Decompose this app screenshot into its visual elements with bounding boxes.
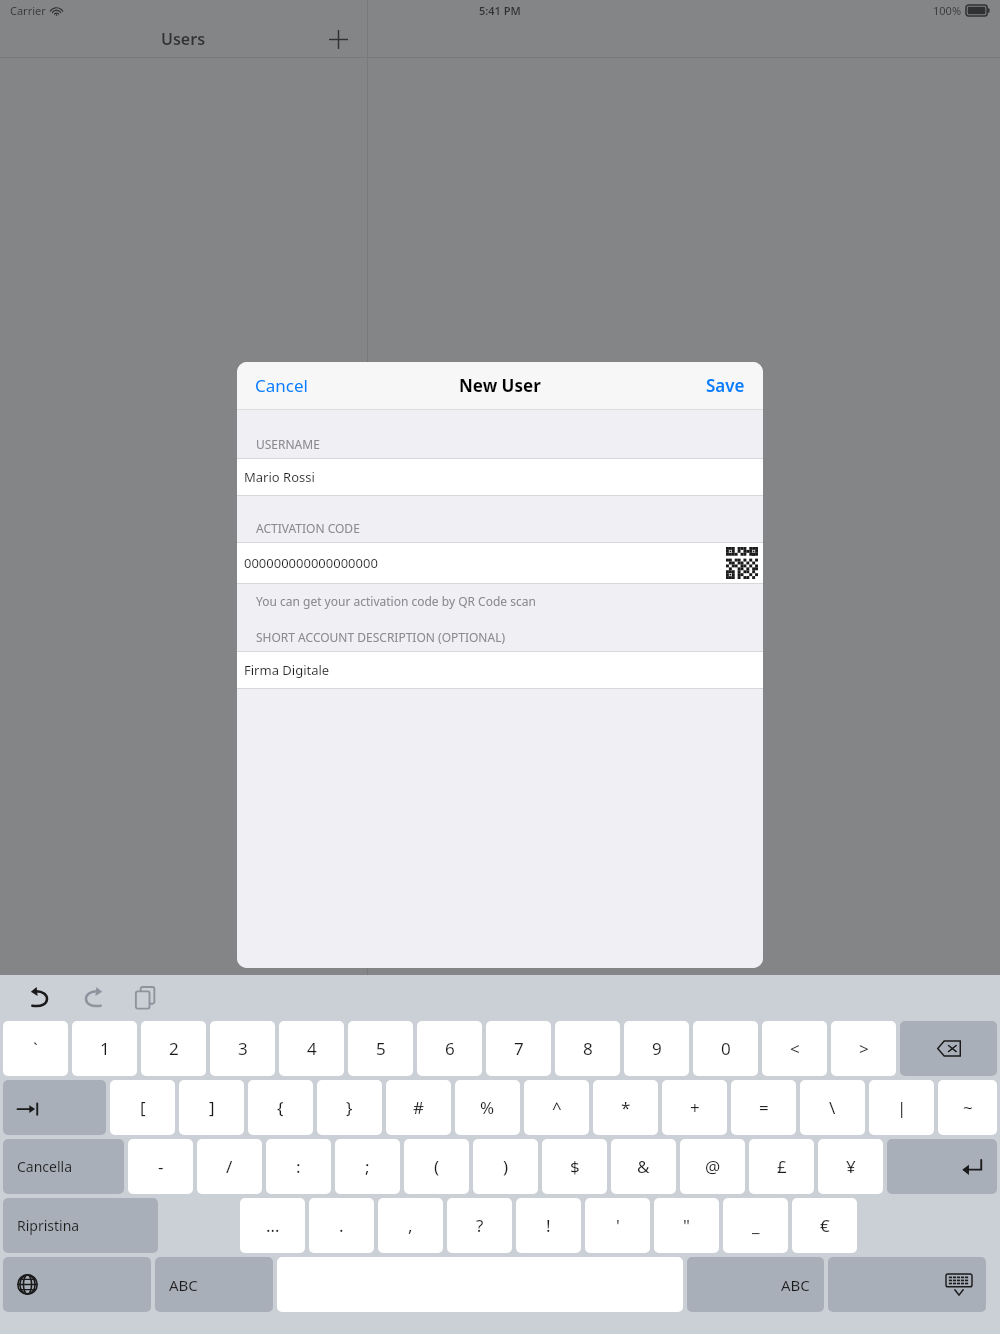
button[interactable]: # bbox=[386, 1080, 451, 1135]
button[interactable]: € bbox=[792, 1198, 857, 1253]
staticText: $ bbox=[570, 1155, 580, 1178]
button[interactable]: | bbox=[869, 1080, 934, 1135]
staticText: 100% bbox=[933, 3, 962, 18]
staticText: @ bbox=[705, 1155, 721, 1178]
button[interactable]: Scan QR code bbox=[724, 545, 760, 581]
button[interactable]: Backspace bbox=[900, 1021, 997, 1076]
staticText: \ bbox=[829, 1096, 836, 1119]
button[interactable]: { bbox=[248, 1080, 313, 1135]
button[interactable]: ] bbox=[179, 1080, 244, 1135]
button[interactable]: [ bbox=[110, 1080, 175, 1135]
button[interactable]: ABC bbox=[687, 1257, 824, 1312]
staticText: 7 bbox=[514, 1037, 524, 1060]
button[interactable]: 7 bbox=[486, 1021, 551, 1076]
staticText: < bbox=[790, 1037, 800, 1060]
staticText: , bbox=[408, 1214, 413, 1237]
button[interactable]: Return bbox=[887, 1139, 997, 1194]
staticText: 1 bbox=[100, 1037, 110, 1060]
staticText: * bbox=[621, 1096, 631, 1119]
button[interactable]: < bbox=[762, 1021, 827, 1076]
button[interactable]: ~ bbox=[938, 1080, 997, 1135]
button[interactable]: + bbox=[662, 1080, 727, 1135]
button[interactable]: Undo bbox=[20, 978, 60, 1018]
button[interactable]: _ bbox=[723, 1198, 788, 1253]
button[interactable]: ? bbox=[447, 1198, 512, 1253]
button[interactable]: , bbox=[378, 1198, 443, 1253]
button[interactable]: … bbox=[240, 1198, 305, 1253]
button[interactable]: ¥ bbox=[818, 1139, 883, 1194]
button[interactable]: Mario Rossi bbox=[237, 459, 763, 495]
button[interactable]: $ bbox=[542, 1139, 607, 1194]
button[interactable]: 0 bbox=[693, 1021, 758, 1076]
button[interactable]: 6 bbox=[417, 1021, 482, 1076]
button[interactable]: / bbox=[197, 1139, 262, 1194]
staticText: ] bbox=[209, 1096, 215, 1119]
staticText: ( bbox=[434, 1155, 440, 1178]
staticText: Cancella bbox=[17, 1157, 73, 1176]
button[interactable]: Ripristina bbox=[3, 1198, 158, 1253]
button[interactable]: 1 bbox=[72, 1021, 137, 1076]
staticText: ) bbox=[503, 1155, 509, 1178]
staticText: Tap '+' to add a new user bbox=[407, 675, 593, 697]
staticText: [ bbox=[140, 1096, 146, 1119]
button[interactable]: " bbox=[654, 1198, 719, 1253]
button[interactable]: 8 bbox=[555, 1021, 620, 1076]
button[interactable]: Redo bbox=[73, 978, 113, 1018]
button[interactable]: Cancella bbox=[3, 1139, 124, 1194]
staticText: = bbox=[759, 1096, 769, 1119]
button[interactable]: ^ bbox=[524, 1080, 589, 1135]
button[interactable]: 2 bbox=[141, 1021, 206, 1076]
button[interactable]: ) bbox=[473, 1139, 538, 1194]
button[interactable]: \ bbox=[800, 1080, 865, 1135]
button[interactable]: Paste bbox=[126, 978, 166, 1018]
staticText: 0 bbox=[721, 1037, 731, 1060]
staticText: 5 bbox=[376, 1037, 386, 1060]
button[interactable]: - bbox=[128, 1139, 193, 1194]
staticText: ¥ bbox=[846, 1155, 856, 1178]
button[interactable]: ` bbox=[3, 1021, 68, 1076]
button[interactable]: Dismiss bbox=[828, 1257, 986, 1312]
staticText: > bbox=[859, 1037, 869, 1060]
staticText: _ bbox=[752, 1214, 760, 1237]
button[interactable]: Tab bbox=[3, 1080, 106, 1135]
button[interactable]: * bbox=[593, 1080, 658, 1135]
button[interactable]: } bbox=[317, 1080, 382, 1135]
button[interactable]: . bbox=[309, 1198, 374, 1253]
staticText: : bbox=[296, 1155, 301, 1178]
staticText: } bbox=[346, 1096, 353, 1119]
button[interactable]: £ bbox=[749, 1139, 814, 1194]
staticText: 3 bbox=[238, 1037, 248, 1060]
button[interactable]: 000000000000000000 bbox=[237, 543, 763, 583]
staticText: Firma Digitale bbox=[244, 661, 330, 679]
button[interactable]: ' bbox=[585, 1198, 650, 1253]
button[interactable]: > bbox=[831, 1021, 896, 1076]
button[interactable]: Globe bbox=[3, 1257, 151, 1312]
staticText: ^ bbox=[552, 1096, 562, 1119]
staticText: Mario Rossi bbox=[244, 468, 315, 486]
button[interactable]: Add user bbox=[323, 24, 353, 54]
button[interactable]: Firma Digitale bbox=[237, 652, 763, 688]
button[interactable]: Cancel bbox=[255, 362, 308, 409]
button[interactable]: : bbox=[266, 1139, 331, 1194]
staticText: & bbox=[637, 1155, 650, 1178]
staticText: # bbox=[413, 1096, 424, 1119]
button[interactable]: @ bbox=[680, 1139, 745, 1194]
staticText: ~ bbox=[963, 1096, 973, 1119]
staticText: / bbox=[226, 1155, 233, 1178]
button[interactable]: & bbox=[611, 1139, 676, 1194]
button[interactable]: = bbox=[731, 1080, 796, 1135]
button[interactable]: % bbox=[455, 1080, 520, 1135]
button[interactable]: ( bbox=[404, 1139, 469, 1194]
staticText: ACTIVATION CODE bbox=[256, 520, 360, 536]
staticText: Carrier bbox=[10, 3, 46, 18]
button[interactable]: Save bbox=[706, 362, 745, 409]
button[interactable]: 4 bbox=[279, 1021, 344, 1076]
staticText: Save bbox=[706, 374, 745, 397]
button[interactable]: ABC bbox=[155, 1257, 273, 1312]
button[interactable]: ; bbox=[335, 1139, 400, 1194]
button[interactable]: 5 bbox=[348, 1021, 413, 1076]
button[interactable]: 3 bbox=[210, 1021, 275, 1076]
button[interactable]: ! bbox=[516, 1198, 581, 1253]
button[interactable]: 9 bbox=[624, 1021, 689, 1076]
